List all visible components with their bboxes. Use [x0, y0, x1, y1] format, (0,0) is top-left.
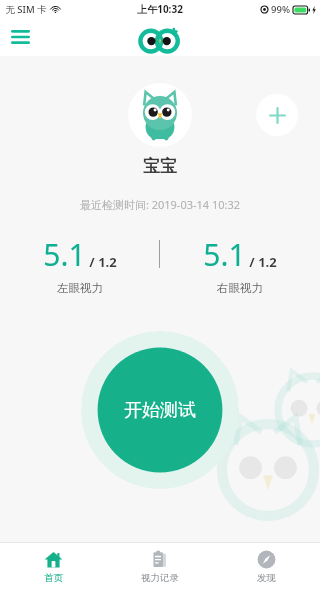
staticText: 最近检测时间: 2019-03-14 10:32 [0, 197, 320, 212]
staticText: 宝宝 [0, 156, 320, 177]
staticText: 发现 [257, 572, 276, 584]
staticText: 5.1 [43, 234, 86, 275]
button[interactable]: 5.1 [0, 234, 159, 295]
button[interactable]: 开始测试 [81, 331, 239, 489]
staticText: 上午10:32 [137, 2, 183, 16]
staticText: 5.1 [203, 234, 246, 275]
staticText: 视力记录 [141, 572, 179, 584]
button[interactable]: 视力记录 [106, 543, 213, 590]
staticText: / 1.2 [249, 253, 277, 271]
button[interactable]: Profile 宝宝 [128, 83, 192, 147]
button[interactable]: 首页 [0, 543, 106, 590]
staticText: 左眼视力 [57, 281, 103, 295]
staticText: 开始测试 [124, 399, 196, 422]
staticText: 右眼视力 [217, 281, 263, 295]
button[interactable]: Menu [0, 18, 40, 56]
button[interactable]: 5.1 [160, 234, 320, 295]
staticText: 99% [271, 3, 290, 16]
staticText: 无 SIM 卡 [5, 3, 47, 16]
button[interactable]: App logo [137, 25, 183, 51]
button[interactable]: Add profile [256, 94, 298, 136]
button[interactable]: 发现 [213, 543, 320, 590]
staticText: / 1.2 [89, 253, 117, 271]
staticText: 首页 [44, 572, 63, 584]
